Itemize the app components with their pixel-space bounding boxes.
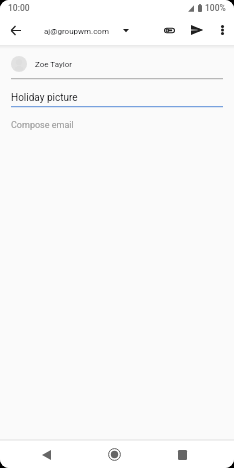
button[interactable]: Send xyxy=(184,15,210,45)
button[interactable]: Recent apps xyxy=(162,441,202,468)
button[interactable]: Change sender address xyxy=(109,15,141,45)
button[interactable]: Attach file xyxy=(156,15,182,45)
button[interactable]: Home xyxy=(94,441,134,468)
staticText: Zoe Taylor xyxy=(35,60,72,69)
button[interactable]: Zoe Taylor xyxy=(0,49,234,78)
staticText: 10:00 xyxy=(8,3,30,13)
staticText: aj@groupwm.com xyxy=(44,27,109,36)
button[interactable]: Navigate up xyxy=(0,15,32,45)
staticText: Holiday picture xyxy=(11,92,78,104)
button[interactable]: More options xyxy=(210,15,234,45)
staticText: Compose email xyxy=(11,120,74,131)
staticText: 100% xyxy=(205,3,226,13)
button[interactable]: Back xyxy=(26,441,66,468)
button[interactable]: Compose email xyxy=(0,108,234,136)
button[interactable]: Holiday picture xyxy=(0,80,234,106)
